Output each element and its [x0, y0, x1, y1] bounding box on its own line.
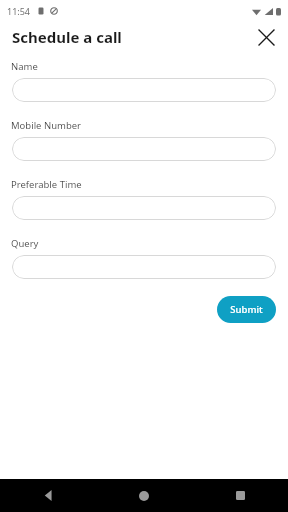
- staticText: Query: [11, 237, 39, 250]
- button[interactable]: Close: [252, 23, 280, 51]
- staticText: Submit: [230, 303, 263, 316]
- button[interactable]: Submit: [217, 296, 276, 323]
- staticText: Mobile Number: [11, 119, 82, 132]
- button[interactable]: [12, 255, 276, 279]
- staticText: Name: [11, 60, 38, 73]
- staticText: 11:54: [7, 5, 31, 17]
- button[interactable]: [12, 137, 276, 161]
- staticText: Preferable Time: [11, 178, 82, 191]
- button[interactable]: [12, 196, 276, 220]
- button[interactable]: Back: [0, 479, 96, 512]
- button[interactable]: Home: [96, 479, 192, 512]
- button[interactable]: Recents: [192, 479, 288, 512]
- button[interactable]: [12, 78, 276, 102]
- staticText: Schedule a call: [12, 27, 122, 47]
